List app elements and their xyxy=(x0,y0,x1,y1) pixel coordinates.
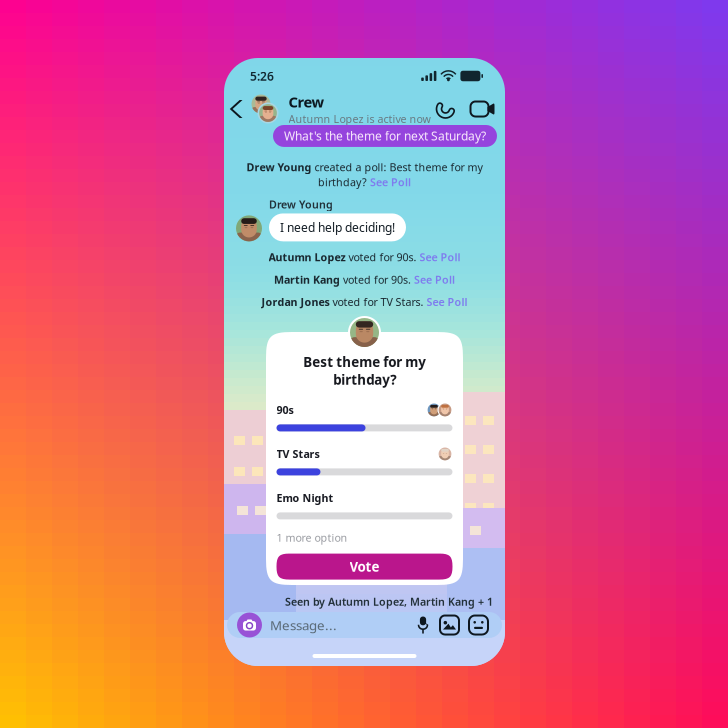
staticText: Jordan Jones xyxy=(261,295,329,309)
button[interactable]: Stickers xyxy=(464,615,493,634)
button[interactable]: Photos xyxy=(435,615,464,634)
staticText: Best theme for my birthday? xyxy=(303,353,426,388)
button[interactable]: Martin Kang xyxy=(224,273,505,286)
staticText: voted for 90s. xyxy=(340,272,414,287)
staticText: See Poll xyxy=(426,295,467,309)
staticText: Vote xyxy=(349,558,379,575)
staticText: I need help deciding! xyxy=(280,219,395,235)
staticText: See Poll xyxy=(419,250,460,264)
staticText: Martin Kang xyxy=(274,272,340,287)
staticText: birthday? xyxy=(318,175,370,189)
staticText: voted for TV Stars. xyxy=(329,295,426,309)
button[interactable]: Jordan Jones xyxy=(224,295,505,309)
staticText: Message... xyxy=(270,616,337,634)
staticText: TV Stars xyxy=(276,447,319,461)
staticText: voted for 90s. xyxy=(345,250,419,264)
staticText: 5:26 xyxy=(250,68,274,84)
staticText: Crew xyxy=(288,92,324,112)
staticText: Emo Night xyxy=(276,491,333,505)
staticText: Drew Young xyxy=(269,197,333,211)
staticText: Autumn Lopez is active now xyxy=(288,112,430,126)
button[interactable]: Drew Young xyxy=(224,160,505,189)
staticText: created a poll: Best theme for my xyxy=(311,160,482,174)
button[interactable]: Autumn Lopez xyxy=(224,250,505,264)
button[interactable]: Back xyxy=(224,92,249,126)
button[interactable]: Camera xyxy=(237,612,270,637)
button[interactable]: Voice message xyxy=(411,616,435,633)
button[interactable]: Emo Night xyxy=(276,490,452,519)
staticText: Drew Young xyxy=(246,160,311,174)
staticText: See Poll xyxy=(414,272,455,287)
button[interactable]: 90s xyxy=(276,402,452,431)
staticText: See Poll xyxy=(370,175,411,189)
button[interactable]: Vote xyxy=(276,554,452,580)
staticText: Autumn Lopez xyxy=(268,250,345,264)
staticText: Seen by Autumn Lopez, Martin Kang + 1 xyxy=(285,594,493,609)
button[interactable]: TV Stars xyxy=(276,446,452,475)
staticText: 90s xyxy=(276,403,293,417)
staticText: 1 more option xyxy=(276,530,347,545)
button[interactable]: Audio call xyxy=(430,94,460,124)
staticText: What's the theme for next Saturday? xyxy=(284,128,486,144)
button[interactable]: Video call xyxy=(464,95,500,122)
